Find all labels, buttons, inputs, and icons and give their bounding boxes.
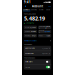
staticText: ▲ <box>24 22 25 24</box>
button[interactable]: Income <box>24 26 37 29</box>
staticText: 12.00 <box>46 35 50 37</box>
staticText: Fees <box>39 35 43 37</box>
staticText: 642.80 <box>31 31 36 32</box>
button[interactable]: Income <box>37 8 45 12</box>
staticText: PREFERENCES <box>24 57 35 59</box>
staticText: 84.21 <box>32 35 36 37</box>
staticText: Notifications <box>25 61 33 63</box>
staticText: ACCOUNTS <box>24 43 32 45</box>
button[interactable]: Goals <box>45 8 52 12</box>
button[interactable]: Notifications <box>24 59 51 64</box>
staticText: 3,377.31 <box>42 53 48 54</box>
staticText: Account <box>32 4 43 8</box>
button[interactable]: Fees <box>38 34 51 37</box>
staticText: Savings Plus <box>25 53 34 54</box>
staticText: 5,482.19 <box>24 15 45 22</box>
staticText: Main Checking <box>25 47 35 49</box>
staticText: Summary <box>23 9 30 11</box>
button[interactable]: Face ID <box>24 65 51 70</box>
button[interactable]: Main Checking <box>24 46 51 51</box>
staticText: 128.40 (2.4%) <box>25 22 33 24</box>
staticText: Pending <box>25 35 31 37</box>
staticText: View all transactions <box>24 40 37 42</box>
button[interactable]: Savings <box>24 30 37 33</box>
staticText: 1,918.02 <box>44 31 50 32</box>
staticText: Spending <box>39 25 45 29</box>
button[interactable]: Spending <box>30 8 38 12</box>
staticText: Income <box>25 26 30 28</box>
button[interactable]: Pending <box>24 34 37 37</box>
staticText: Goals <box>46 9 50 11</box>
button[interactable]: Savings Plus <box>24 51 51 56</box>
staticText: Savings <box>25 31 31 32</box>
staticText: Spending <box>30 9 37 11</box>
staticText: Invested <box>39 30 44 33</box>
staticText: 3,120.00 <box>30 26 36 28</box>
staticText: 1,904.55 <box>45 25 50 29</box>
staticText: 2,104.88 <box>42 47 48 49</box>
staticText: Face ID <box>25 66 30 68</box>
button[interactable]: Spending <box>38 26 51 29</box>
staticText: 9:41 <box>24 0 31 4</box>
button[interactable]: More options <box>48 4 51 8</box>
staticText: Income <box>39 9 44 11</box>
button[interactable]: Invested <box>38 30 51 33</box>
button[interactable]: View all transactions <box>22 38 53 43</box>
staticText: TOTAL BALANCE <box>24 13 36 15</box>
button[interactable]: Back <box>24 4 27 8</box>
button[interactable]: Summary <box>23 8 30 12</box>
